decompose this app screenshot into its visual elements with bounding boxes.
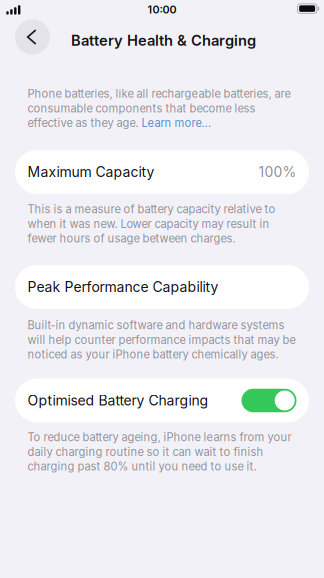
staticText: when it was new. Lower capacity may resu…: [27, 217, 269, 231]
staticText: Peak Performance Capability: [27, 278, 218, 295]
staticText: consumable components that become less: [27, 102, 255, 115]
staticText: Phone batteries, like all rechargeable b…: [27, 87, 290, 100]
button[interactable]: Optimised Battery Charging: [241, 389, 296, 412]
staticText: Optimised Battery Charging: [27, 392, 208, 409]
staticText: 100%: [258, 163, 296, 180]
staticText: will help counter performance impacts th…: [27, 333, 295, 347]
staticText: Learn more…: [141, 116, 211, 130]
staticText: Battery Health & Charging: [71, 31, 256, 49]
button[interactable]: Peak Performance Capability: [15, 265, 309, 309]
button[interactable]: Learn more…: [141, 116, 211, 130]
staticText: fewer hours of usage between charges.: [27, 232, 235, 245]
staticText: effective as they age.: [27, 116, 141, 130]
staticText: 10:00: [147, 3, 176, 16]
staticText: noticed as your iPhone battery chemicall…: [27, 348, 278, 361]
button[interactable]: Maximum Capacity: [15, 150, 309, 194]
button[interactable]: Optimised Battery Charging: [15, 378, 309, 422]
staticText: charging past 80% until you need to use …: [27, 460, 256, 473]
staticText: daily charging routine so it can wait to…: [27, 445, 263, 459]
staticText: This is a measure of battery capacity re…: [27, 202, 275, 216]
staticText: Built-in dynamic software and hardware s…: [27, 318, 284, 332]
button[interactable]: Back: [15, 19, 50, 54]
staticText: Maximum Capacity: [27, 163, 154, 180]
staticText: To reduce battery ageing, iPhone learns …: [27, 430, 291, 444]
